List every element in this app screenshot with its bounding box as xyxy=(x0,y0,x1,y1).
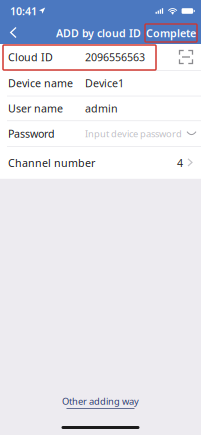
staticText: Cloud ID xyxy=(8,50,53,64)
staticText: 4 xyxy=(177,156,183,170)
staticText: Device1 xyxy=(85,76,124,90)
button[interactable]: Other adding way xyxy=(52,392,149,412)
button[interactable]: Show password xyxy=(182,131,196,136)
staticText: Other adding way xyxy=(62,395,139,407)
button[interactable]: Complete xyxy=(145,24,197,42)
staticText: 10:41 xyxy=(10,4,37,18)
button[interactable]: Scan QR code xyxy=(179,50,193,64)
button[interactable]: Channel number xyxy=(0,147,201,179)
button[interactable]: Back xyxy=(2,23,25,42)
staticText: Complete xyxy=(146,26,196,40)
staticText: Password xyxy=(8,126,55,141)
staticText: admin xyxy=(85,101,118,115)
staticText: Channel number xyxy=(8,156,95,170)
staticText: Input device password xyxy=(85,127,182,140)
staticText: 2096556563 xyxy=(85,50,145,64)
staticText: User name xyxy=(8,101,63,115)
staticText: ADD by cloud ID xyxy=(56,26,141,40)
staticText: Device name xyxy=(8,76,73,90)
